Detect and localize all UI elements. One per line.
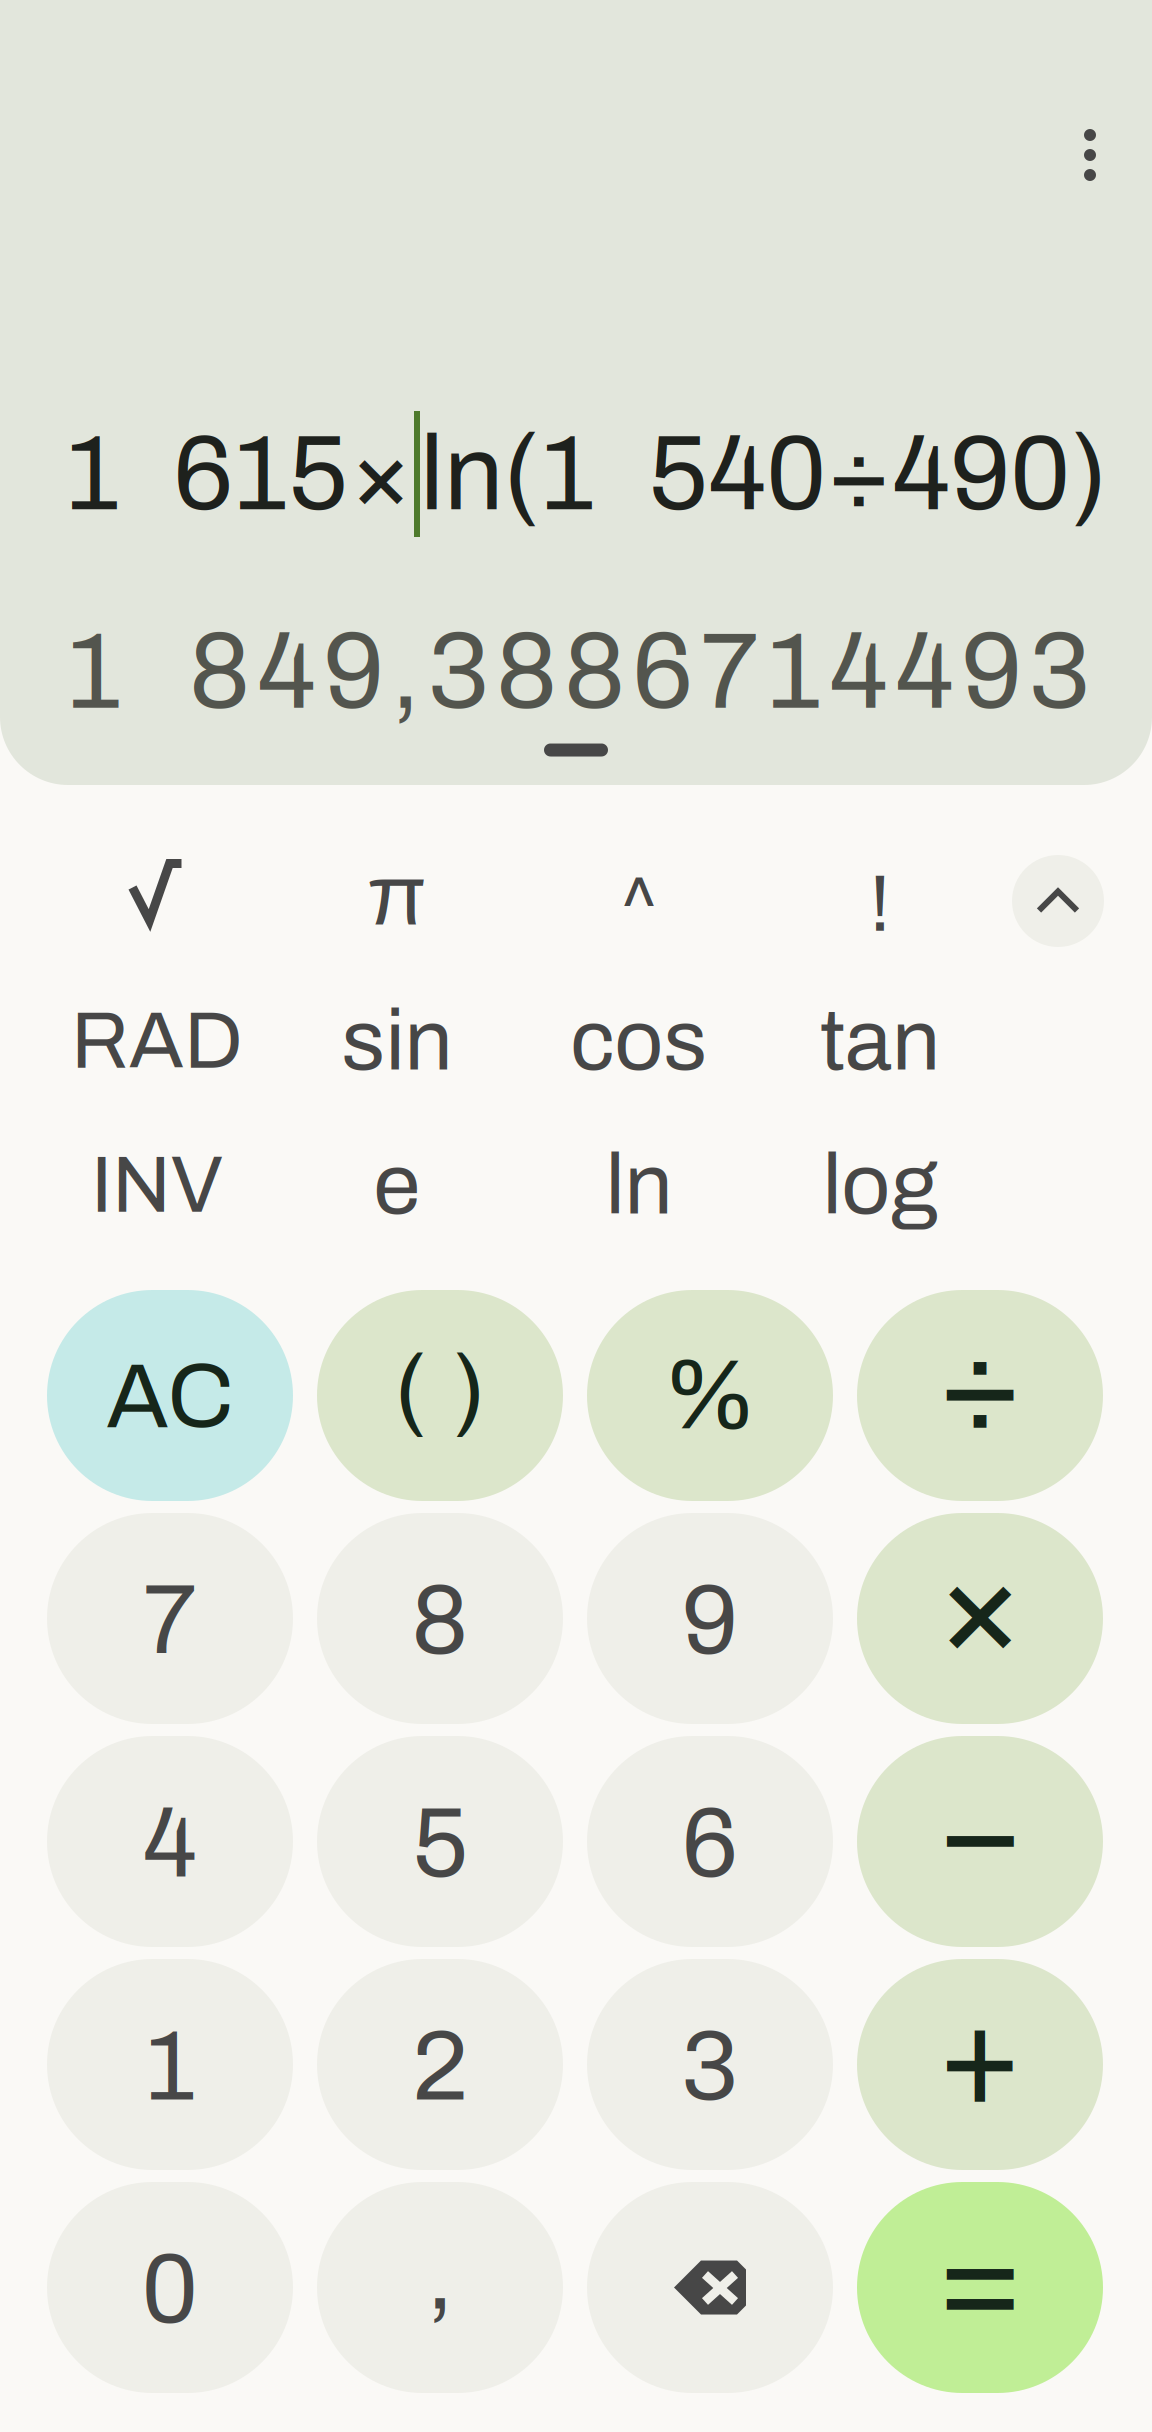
staticText: 4 bbox=[142, 1790, 197, 1897]
staticText: , bbox=[426, 2222, 453, 2329]
staticText: ÷ bbox=[936, 1307, 1024, 1460]
staticText: tan bbox=[820, 995, 940, 1087]
staticText: ( ) bbox=[394, 1339, 486, 1442]
staticText: 1 8 4 9 , 3 8 8 6 7 1 4 4 9 3 bbox=[66, 614, 1090, 730]
button[interactable]: 2 bbox=[317, 1959, 563, 2170]
button[interactable]: 1 bbox=[47, 1959, 293, 2170]
staticText: % bbox=[663, 1342, 757, 1449]
button[interactable]: ÷ bbox=[857, 1290, 1103, 1501]
button[interactable]: 4 bbox=[47, 1736, 293, 1947]
staticText: 1 bbox=[144, 2013, 195, 2120]
staticText: = bbox=[936, 2202, 1024, 2355]
button[interactable]: ^ bbox=[524, 856, 754, 986]
button[interactable]: 3 bbox=[587, 1959, 833, 2170]
staticText: ^ bbox=[616, 864, 661, 942]
button[interactable]: + bbox=[857, 1959, 1103, 2170]
button[interactable]: e bbox=[282, 1120, 512, 1250]
staticText: × bbox=[933, 1524, 1026, 1687]
button[interactable]: ln bbox=[524, 1120, 754, 1250]
staticText: − bbox=[936, 1754, 1024, 1907]
staticText: 3 bbox=[681, 2013, 738, 2120]
staticText: 0 bbox=[141, 2236, 198, 2343]
button[interactable]: INV bbox=[42, 1120, 272, 1250]
button[interactable]: 0 bbox=[47, 2182, 293, 2393]
staticText: ln(1 540÷490) bbox=[420, 417, 1107, 531]
staticText: RAD bbox=[71, 997, 243, 1084]
staticText: 6 bbox=[681, 1790, 738, 1897]
staticText: ! bbox=[869, 860, 891, 947]
staticText: INV bbox=[91, 1141, 223, 1228]
button[interactable]: tan bbox=[765, 976, 995, 1106]
staticText: + bbox=[936, 1980, 1023, 2131]
staticText: log bbox=[822, 1139, 937, 1231]
staticText: 8 bbox=[411, 1567, 468, 1674]
staticText: 2 bbox=[412, 2013, 468, 2120]
button[interactable]: 8 bbox=[317, 1513, 563, 1724]
button[interactable]: More options bbox=[1035, 100, 1145, 210]
button[interactable]: AC bbox=[47, 1290, 293, 1501]
button[interactable]: cos bbox=[524, 976, 754, 1106]
button[interactable]: − bbox=[857, 1736, 1103, 1947]
staticText: 5 bbox=[412, 1790, 468, 1897]
button[interactable]: 5 bbox=[317, 1736, 563, 1947]
button[interactable]: = bbox=[857, 2182, 1103, 2393]
button[interactable]: × bbox=[857, 1513, 1103, 1724]
staticText: 7 bbox=[142, 1567, 197, 1674]
staticText: cos bbox=[570, 995, 707, 1087]
staticText: 9 bbox=[681, 1567, 738, 1674]
staticText: AC bbox=[106, 1347, 233, 1446]
button[interactable]: Square root bbox=[42, 827, 272, 957]
button[interactable]: 6 bbox=[587, 1736, 833, 1947]
button[interactable]: sin bbox=[282, 976, 512, 1106]
button[interactable]: log bbox=[765, 1120, 995, 1250]
button[interactable]: ( ) bbox=[317, 1290, 563, 1501]
button[interactable]: Expand bbox=[1012, 855, 1104, 947]
staticText: 1 615× bbox=[65, 417, 414, 531]
button[interactable]: % bbox=[587, 1290, 833, 1501]
staticText: π bbox=[367, 850, 427, 942]
button[interactable]: ! bbox=[765, 839, 995, 969]
button[interactable]: , bbox=[317, 2182, 563, 2393]
staticText: ln bbox=[605, 1139, 672, 1231]
button[interactable]: Delete bbox=[587, 2182, 833, 2393]
button[interactable]: 9 bbox=[587, 1513, 833, 1724]
button[interactable]: 7 bbox=[47, 1513, 293, 1724]
button[interactable]: RAD bbox=[42, 976, 272, 1106]
staticText: sin bbox=[341, 995, 452, 1087]
button[interactable]: π bbox=[282, 831, 512, 961]
staticText: e bbox=[373, 1139, 420, 1231]
